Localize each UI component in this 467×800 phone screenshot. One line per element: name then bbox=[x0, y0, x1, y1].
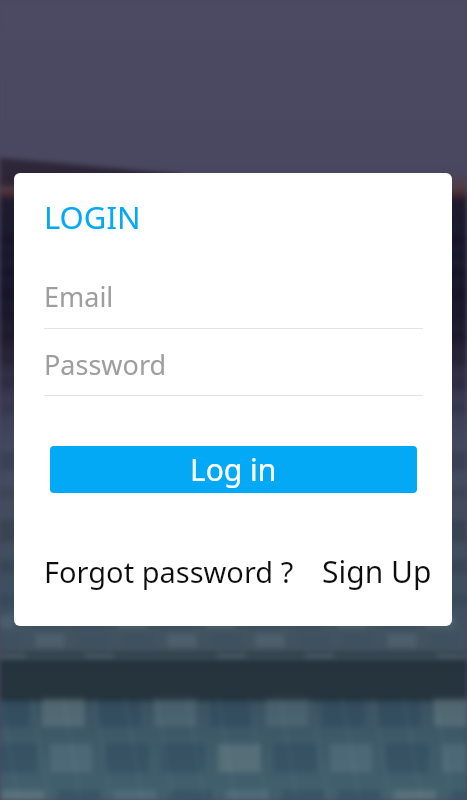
staticText: LOGIN bbox=[44, 196, 141, 238]
staticText: Email bbox=[44, 278, 114, 315]
staticText: Password bbox=[44, 346, 167, 383]
staticText: Forgot password ? bbox=[44, 552, 294, 591]
staticText: Sign Up bbox=[322, 551, 432, 592]
button[interactable]: Log in bbox=[50, 446, 417, 493]
staticText: Log in bbox=[190, 449, 277, 490]
button[interactable]: Forgot password ? bbox=[44, 552, 294, 591]
button[interactable]: Sign Up bbox=[322, 551, 432, 592]
